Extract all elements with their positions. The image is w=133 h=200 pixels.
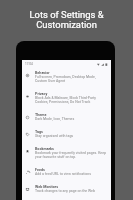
button[interactable]: Theme — [22, 110, 111, 127]
staticText: Privacy — [35, 92, 48, 96]
staticText: Full-screen, Promobars, Desktop Mode, — [35, 75, 96, 79]
staticText: Stay organised with tags — [35, 134, 74, 138]
staticText: Custom User Agent — [35, 79, 66, 83]
staticText: 17:04 — [25, 62, 33, 66]
button[interactable]: Web Monitors — [22, 182, 111, 199]
staticText: Track changes to any page on the Web — [35, 189, 95, 193]
staticText: Lots of Settings & Customization — [0, 9, 133, 30]
staticText: Feeds — [35, 168, 45, 172]
staticText: your favourite stuff on top. — [35, 155, 77, 159]
staticText: Add a feed URL to view notifications — [35, 172, 91, 176]
staticText: Bookmarks — [35, 147, 54, 151]
staticText: Behavior — [35, 71, 50, 75]
staticText: Web Monitors — [35, 185, 59, 189]
staticText: Block Ads & Malware, Block Third-Party — [35, 96, 96, 100]
staticText: Dark Mode, Icon, Themes — [35, 117, 75, 121]
staticText: Cookies, Permissions, Do Not Track — [35, 100, 91, 104]
staticText: Tags — [35, 130, 43, 134]
button[interactable]: Privacy — [22, 89, 111, 110]
button[interactable]: Behavior — [22, 68, 111, 89]
staticText: Bookmark your frequently visited pages. … — [35, 151, 106, 155]
button[interactable]: Tags — [22, 127, 111, 144]
button[interactable]: Feeds — [22, 165, 111, 182]
button[interactable]: Bookmarks — [22, 144, 111, 165]
staticText: Theme — [35, 113, 47, 117]
